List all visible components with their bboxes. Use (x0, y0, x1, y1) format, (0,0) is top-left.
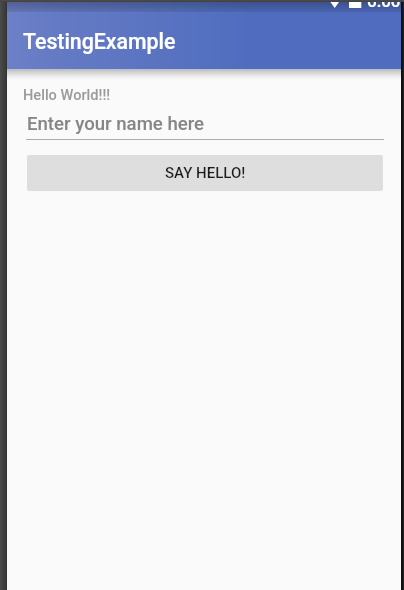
button[interactable]: Enter your name here (23, 109, 387, 140)
staticText: 6:00 (367, 0, 401, 11)
staticText: TestingExample (23, 29, 176, 54)
staticText: Enter your name here (27, 113, 205, 135)
button[interactable]: SAY HELLO! (27, 155, 383, 191)
other: Status bar (7, 0, 401, 12)
staticText: SAY HELLO! (165, 164, 246, 182)
staticText: Hello World!!! (23, 86, 111, 103)
